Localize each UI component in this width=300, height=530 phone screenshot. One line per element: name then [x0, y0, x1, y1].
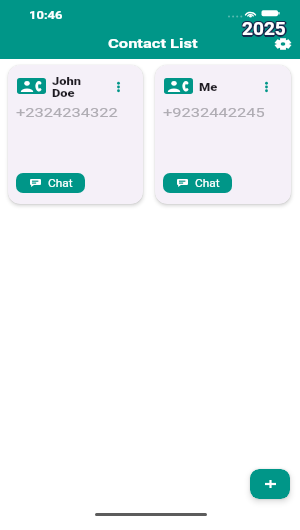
staticText: Chat	[195, 177, 220, 190]
staticText: 2025	[241, 18, 285, 39]
button[interactable]: Me	[155, 65, 291, 204]
button[interactable]: Add contact	[250, 469, 290, 499]
staticText: 2025	[243, 19, 287, 40]
staticText: Me	[199, 80, 218, 93]
button[interactable]: Chat	[163, 173, 232, 193]
staticText: 2025	[241, 17, 285, 38]
button[interactable]: Settings	[272, 33, 293, 54]
staticText: +9232442245	[163, 106, 266, 120]
staticText: 2025	[242, 20, 286, 41]
staticText: 2025	[242, 17, 286, 38]
staticText: 2025	[243, 17, 287, 38]
staticText: Contact List	[108, 36, 198, 51]
staticText: 10:46	[29, 9, 63, 22]
staticText: 2025	[242, 18, 286, 39]
button[interactable]: John Doe	[8, 65, 143, 204]
staticText: John Doe	[52, 74, 81, 100]
staticText: Chat	[48, 177, 73, 190]
button[interactable]: More options	[259, 79, 273, 95]
staticText: 2025	[241, 19, 285, 40]
staticText: +2324234322	[16, 106, 119, 120]
button[interactable]: More options	[111, 79, 125, 95]
button[interactable]: Chat	[16, 173, 85, 193]
staticText: 2025	[244, 18, 288, 39]
